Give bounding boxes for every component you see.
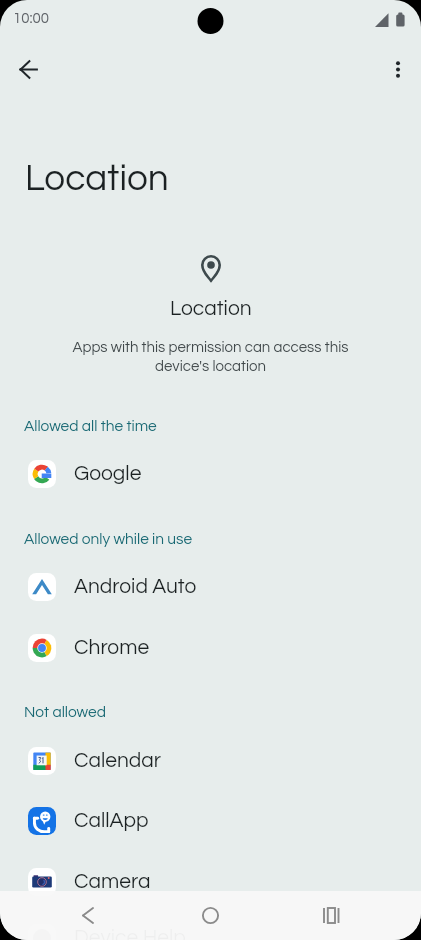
button[interactable]: Android Auto bbox=[0, 563, 421, 611]
button[interactable]: Calendar bbox=[0, 737, 421, 785]
button[interactable]: More options bbox=[378, 49, 419, 90]
button[interactable]: Chrome bbox=[0, 624, 421, 672]
button[interactable]: Device Help bbox=[0, 914, 421, 940]
staticText: Android Auto bbox=[74, 576, 197, 598]
staticText: CallApp bbox=[74, 810, 149, 832]
button[interactable]: Recent apps bbox=[307, 891, 355, 939]
staticText: Apps with this permission can access thi… bbox=[56, 340, 365, 374]
button[interactable]: Google bbox=[0, 450, 421, 498]
staticText: Not allowed bbox=[24, 704, 106, 720]
staticText: Chrome bbox=[74, 637, 150, 659]
staticText: Google bbox=[74, 463, 142, 485]
button[interactable]: Back bbox=[64, 891, 112, 939]
button[interactable]: Navigate up bbox=[8, 49, 49, 90]
staticText: Camera bbox=[74, 871, 151, 893]
staticText: Allowed only while in use bbox=[24, 531, 193, 547]
staticText: Location bbox=[170, 298, 252, 320]
button[interactable]: CallApp bbox=[0, 797, 421, 845]
staticText: Location bbox=[25, 160, 169, 198]
staticText: Calendar bbox=[74, 750, 162, 772]
staticText: 10:00 bbox=[13, 11, 50, 26]
button[interactable]: Home bbox=[186, 891, 234, 939]
button[interactable]: Camera bbox=[0, 858, 421, 906]
staticText: Allowed all the time bbox=[24, 418, 157, 434]
